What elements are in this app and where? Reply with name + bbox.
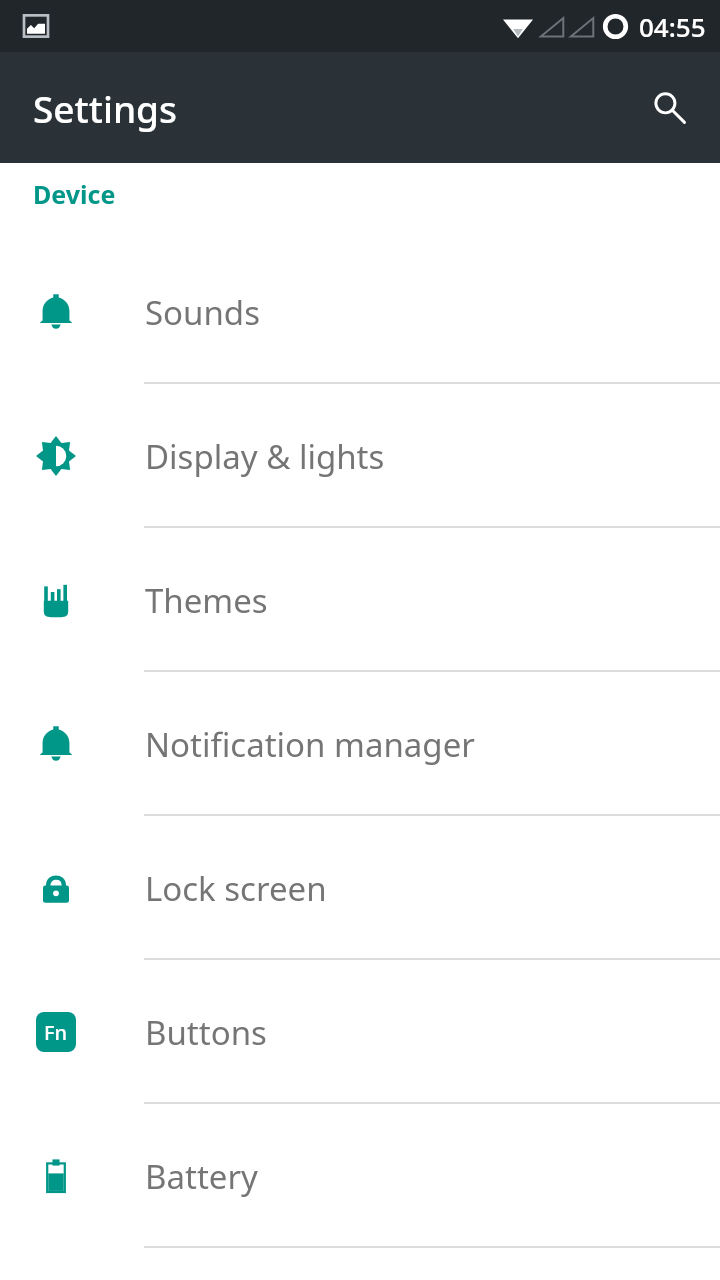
- staticText: Settings: [33, 83, 178, 133]
- button[interactable]: Display & lights: [0, 384, 720, 528]
- staticText: Battery: [145, 1154, 258, 1199]
- staticText: Fn: [44, 1019, 68, 1046]
- staticText: Sounds: [145, 290, 260, 335]
- button[interactable]: Lock screen: [0, 816, 720, 960]
- staticText: Display & lights: [145, 434, 385, 479]
- staticText: 04:55: [639, 9, 706, 44]
- staticText: Notification manager: [145, 722, 475, 767]
- staticText: Buttons: [145, 1010, 267, 1055]
- staticText: Device: [33, 177, 116, 211]
- button[interactable]: Themes: [0, 528, 720, 672]
- button[interactable]: Notification manager: [0, 672, 720, 816]
- staticText: Themes: [145, 578, 268, 623]
- button[interactable]: Search: [640, 79, 698, 137]
- button[interactable]: Sounds: [0, 240, 720, 384]
- staticText: Lock screen: [145, 866, 327, 911]
- button[interactable]: Fn: [0, 960, 720, 1104]
- button[interactable]: Battery: [0, 1104, 720, 1248]
